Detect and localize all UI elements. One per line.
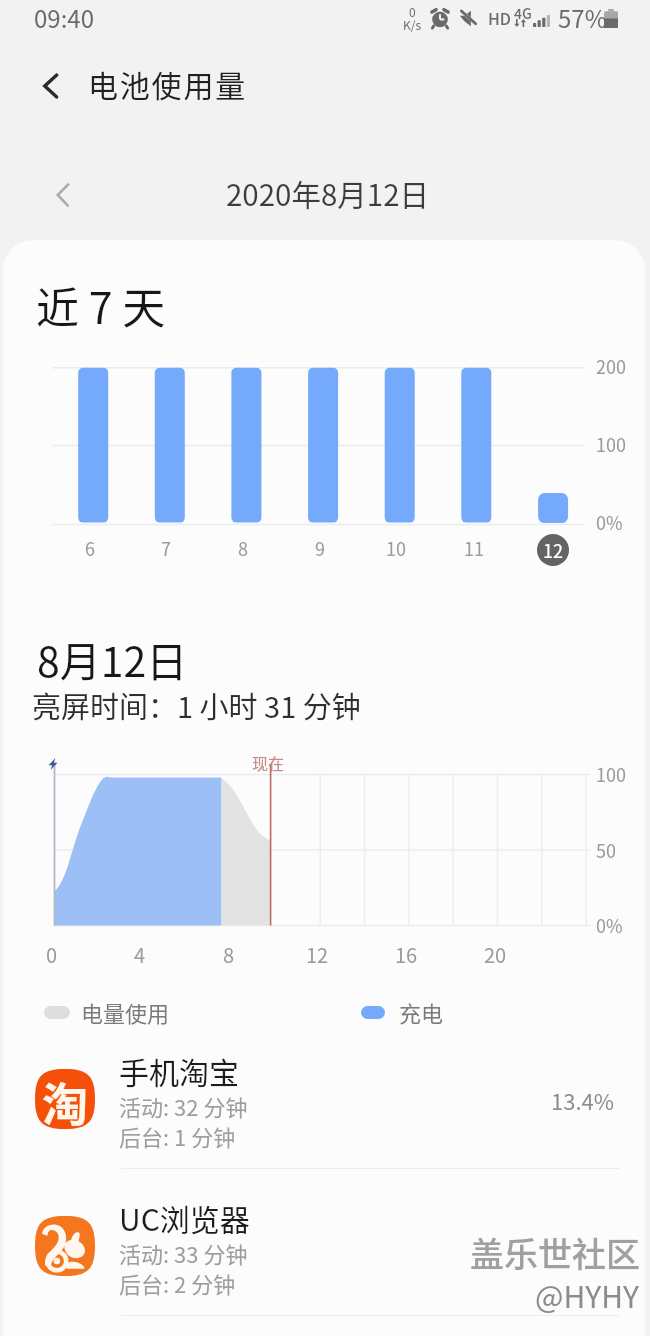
button[interactable]: 12 (537, 534, 569, 566)
staticText: 充电 (399, 996, 444, 1028)
staticText: 0 (46, 940, 58, 969)
staticText: 20 (484, 940, 507, 969)
staticText: 淘 (42, 1068, 88, 1128)
staticText: 2020年8月12日 (226, 172, 430, 215)
staticText: 现在 (252, 751, 285, 774)
staticText: 9 (315, 535, 325, 561)
staticText: UC浏览器 (119, 1196, 250, 1239)
staticText: 16 (395, 940, 418, 969)
staticText: 0% (596, 509, 623, 535)
staticText: 100 (596, 761, 626, 787)
staticText: 4G (514, 3, 532, 23)
staticText: HD (488, 6, 512, 29)
staticText: 12 (543, 537, 563, 563)
staticText: 8 (238, 535, 248, 561)
staticText: 电量使用 (81, 996, 170, 1028)
staticText: 后台: 1 分钟 (119, 1120, 236, 1152)
staticText: 8月12日 (37, 629, 188, 688)
staticText: K/s (403, 16, 422, 33)
staticText: 手机淘宝 (119, 1049, 239, 1092)
button[interactable]: UC浏览器 (3, 1196, 645, 1336)
staticText: 电池使用量 (88, 62, 247, 105)
staticText: 0% (596, 912, 623, 938)
staticText: 8 (223, 940, 235, 969)
staticText: 09:40 (34, 0, 94, 35)
staticText: 6 (85, 535, 95, 561)
staticText: 4 (134, 940, 146, 969)
staticText: 11 (464, 535, 484, 561)
staticText: 0 (409, 3, 416, 20)
staticText: 7 (161, 535, 171, 561)
button[interactable]: Back (27, 62, 75, 110)
staticText: 10 (386, 535, 406, 561)
staticText: 200 (596, 353, 626, 379)
staticText: 盖乐世社区 (470, 1228, 640, 1277)
staticText: 57% (558, 0, 607, 35)
staticText: 50 (596, 837, 616, 863)
staticText: 亮屏时间：1 小时 31 分钟 (32, 684, 361, 726)
button[interactable]: Previous day (39, 171, 87, 219)
staticText: 13.4% (551, 1084, 615, 1116)
button[interactable]: 淘 (3, 1049, 645, 1196)
staticText: 100 (596, 431, 626, 457)
staticText: 活动: 32 分钟 (119, 1090, 248, 1122)
staticText: 12 (306, 940, 329, 969)
staticText: @HYHY (535, 1273, 639, 1316)
staticText: 近 7 天 (36, 274, 166, 336)
staticText: 后台: 2 分钟 (119, 1267, 236, 1299)
staticText: 活动: 33 分钟 (119, 1237, 248, 1269)
